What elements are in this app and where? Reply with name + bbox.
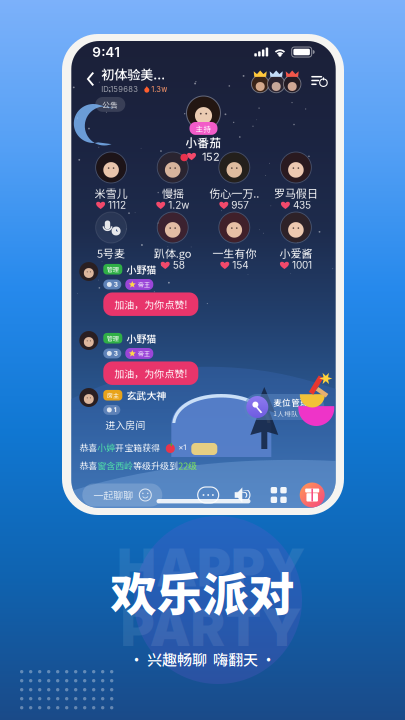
- button[interactable]: 慢摇: [142, 152, 203, 210]
- button[interactable]: 米雪儿: [80, 152, 142, 210]
- button[interactable]: 5号麦: [80, 212, 142, 270]
- button[interactable]: 伤心一万..: [203, 152, 265, 210]
- button[interactable]: 公告: [95, 97, 125, 112]
- staticText: 435: [293, 199, 311, 211]
- button[interactable]: Sound: [235, 486, 255, 504]
- staticText: ID:159683: [101, 85, 138, 94]
- staticText: · 兴趣畅聊 嗨翻天 ·: [129, 648, 276, 670]
- staticText: 1.3w: [151, 85, 167, 94]
- staticText: 1001: [292, 259, 312, 271]
- staticText: 957: [231, 199, 249, 211]
- staticText: 开宝箱获得: [115, 441, 160, 454]
- staticText: 小爱酱: [279, 245, 312, 261]
- staticText: 22级: [178, 459, 197, 472]
- button[interactable]: Top supporter: [265, 67, 285, 90]
- staticText: 麦位管理: [273, 396, 309, 408]
- staticText: 1: [114, 406, 117, 414]
- staticText: 慢摇: [162, 185, 184, 201]
- button[interactable]: User avatar: [79, 388, 98, 407]
- staticText: 公告: [102, 99, 118, 110]
- staticText: 加油，为你点赞!: [114, 297, 187, 311]
- staticText: 152: [202, 150, 220, 163]
- staticText: 3: [114, 280, 118, 288]
- button[interactable]: 小爱酱: [265, 212, 327, 270]
- staticText: 罗马假日: [274, 185, 318, 201]
- staticText: 9:41: [92, 44, 120, 60]
- staticText: 欢乐派对: [110, 558, 294, 625]
- staticText: 恭喜: [79, 459, 97, 472]
- button[interactable]: Back: [82, 65, 98, 93]
- staticText: 1人排队: [273, 408, 298, 418]
- staticText: 1.2w: [168, 199, 189, 211]
- button[interactable]: 罗马假日: [265, 152, 327, 210]
- staticText: 窗含西岭: [97, 459, 133, 472]
- button[interactable]: 一生有你: [203, 212, 265, 270]
- button[interactable]: 主持: [71, 96, 336, 168]
- staticText: ×1: [178, 443, 186, 452]
- button[interactable]: 一起聊聊: [82, 483, 162, 506]
- button[interactable]: More: [271, 487, 287, 503]
- staticText: 帝王: [138, 349, 150, 358]
- staticText: PARTY: [120, 596, 301, 659]
- button[interactable]: Gifts: [300, 482, 325, 507]
- staticText: 5号麦: [97, 245, 125, 261]
- staticText: 恭喜: [79, 441, 97, 454]
- staticText: 一生有你: [212, 245, 256, 261]
- staticText: 伤心一万..: [209, 185, 259, 201]
- button[interactable]: User avatar: [79, 262, 98, 281]
- button[interactable]: Top supporter: [249, 67, 269, 90]
- staticText: HAPPY: [117, 536, 305, 599]
- button[interactable]: Top supporter: [281, 67, 301, 90]
- button[interactable]: Public chat: [198, 486, 219, 503]
- staticText: 米雪儿: [95, 185, 128, 201]
- staticText: 加油，为你点赞!: [114, 366, 187, 380]
- staticText: 一起聊聊: [93, 488, 133, 502]
- staticText: 趴体.go: [154, 245, 192, 261]
- button[interactable]: User avatar: [79, 331, 98, 350]
- staticText: 小野猫: [126, 331, 156, 345]
- staticText: 房主: [107, 391, 119, 400]
- button[interactable]: 麦位管理: [244, 394, 324, 420]
- staticText: 帝王: [138, 280, 150, 289]
- button[interactable]: 趴体.go: [142, 212, 203, 270]
- staticText: 管理: [107, 334, 119, 343]
- button[interactable]: 初体验美...: [101, 64, 167, 94]
- staticText: 小婷: [97, 441, 115, 454]
- staticText: 154: [232, 259, 248, 271]
- staticText: 初体验美...: [101, 64, 165, 83]
- staticText: 管理: [107, 265, 119, 274]
- staticText: 等级升级到: [133, 459, 178, 472]
- staticText: 3: [114, 349, 118, 357]
- staticText: 玄武大神: [126, 388, 166, 402]
- staticText: 主持: [195, 123, 211, 134]
- staticText: 58: [173, 259, 185, 271]
- staticText: 小野猫: [126, 262, 156, 276]
- staticText: 小番茄: [185, 134, 221, 151]
- staticText: 进入房间: [105, 417, 145, 432]
- button[interactable]: Ranking: [309, 72, 325, 86]
- staticText: 1112: [108, 199, 126, 211]
